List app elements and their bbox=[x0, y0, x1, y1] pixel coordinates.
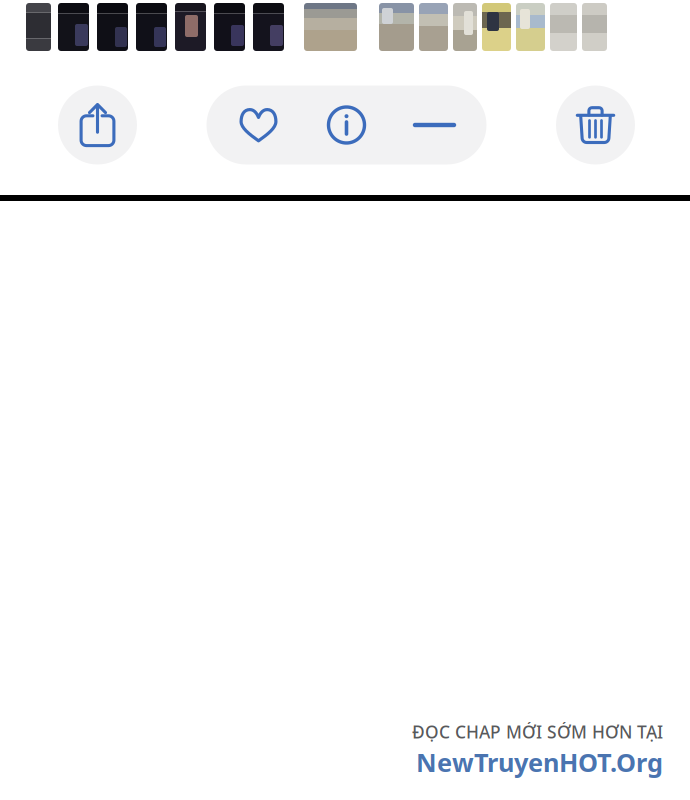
button[interactable]: Remove from Album bbox=[390, 85, 478, 164]
button[interactable]: Delete bbox=[556, 85, 635, 164]
button[interactable]: Share bbox=[58, 85, 137, 164]
staticText: NewTruyenHOT.Org bbox=[416, 745, 663, 779]
button[interactable]: Favorite bbox=[214, 85, 302, 164]
button[interactable]: Info bbox=[302, 85, 390, 164]
staticText: ĐỌC CHAP MỚI SỚM HƠN TẠI bbox=[412, 720, 663, 743]
